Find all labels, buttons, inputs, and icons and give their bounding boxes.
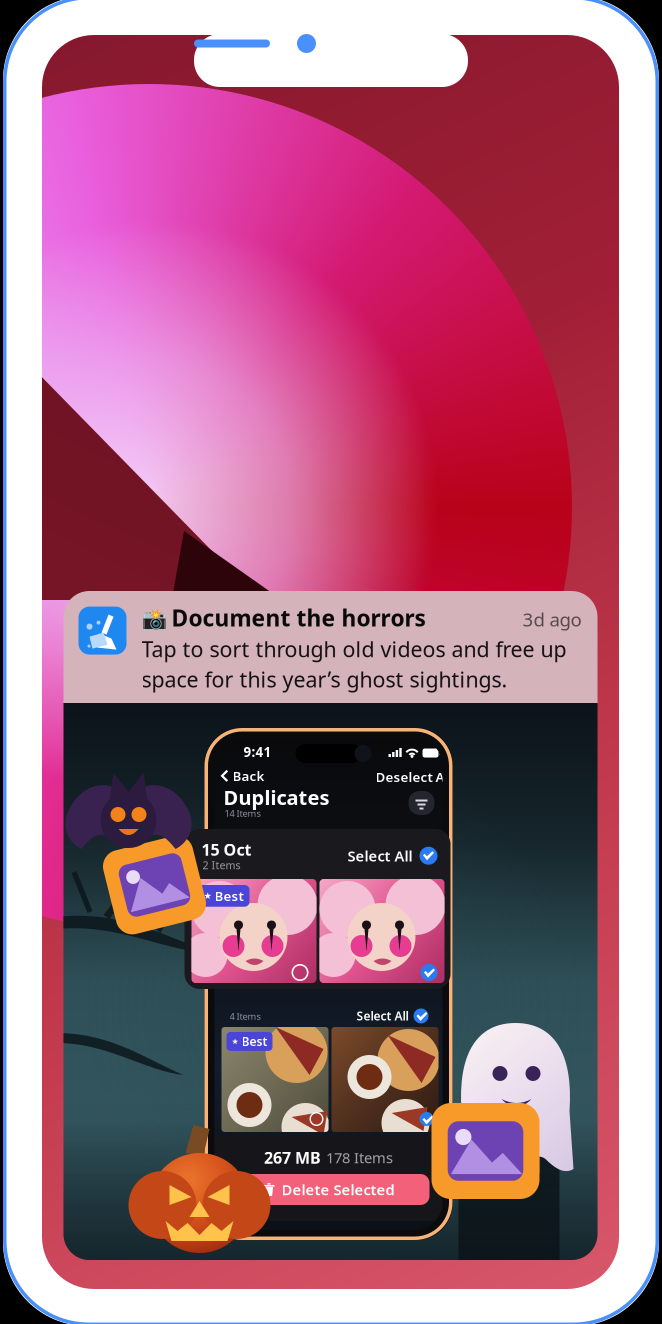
staticText: 2 Items	[202, 858, 240, 872]
button[interactable]: Back	[217, 764, 267, 788]
staticText: 9:41	[243, 743, 271, 761]
staticText: Select All	[356, 1008, 408, 1024]
button[interactable]: Select All	[347, 846, 437, 865]
staticText: Back	[232, 767, 264, 785]
staticText: Deselect All	[375, 768, 452, 786]
staticText: Delete Selected	[281, 1180, 394, 1199]
staticText: ★	[231, 1037, 238, 1046]
staticText: 4 Items	[229, 1010, 260, 1022]
staticText: Tap to sort through old videos and free …	[141, 635, 566, 663]
staticText: 15 Oct	[201, 839, 251, 860]
button[interactable]: Delete Selected	[228, 1174, 429, 1205]
staticText: Duplicates	[223, 784, 329, 811]
staticText: 178 Items	[326, 1148, 393, 1167]
staticText: ★	[203, 891, 211, 901]
staticText: 3d ago	[522, 607, 581, 632]
staticText: Select All	[347, 846, 412, 865]
staticText: Best	[214, 887, 243, 905]
button[interactable]: 📸	[63, 591, 597, 1260]
button[interactable]: Select All	[356, 1008, 428, 1024]
staticText: 14 Items	[224, 807, 260, 819]
staticText: Best	[241, 1033, 267, 1049]
staticText: Document the horrors	[171, 603, 425, 633]
button[interactable]: Deselect All	[372, 765, 455, 789]
staticText: 267 MB	[264, 1147, 321, 1168]
staticText: space for this year’s ghost sightings.	[141, 665, 507, 693]
staticText: 📸	[141, 605, 171, 632]
button[interactable]: Filter	[408, 791, 434, 815]
